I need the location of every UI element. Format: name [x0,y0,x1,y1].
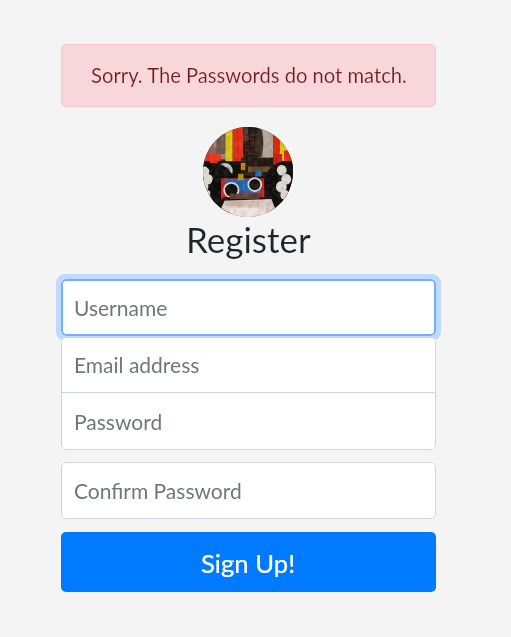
button[interactable]: Sign Up! [61,532,436,592]
button[interactable]: Password [61,393,436,450]
button[interactable]: Username [61,279,436,336]
button[interactable]: Sorry. The Passwords do not match. [61,44,436,107]
staticText: Email address [74,352,200,377]
button[interactable]: Email address [61,337,436,392]
button[interactable]: Confirm Password [61,462,436,519]
staticText: Username [74,295,168,320]
staticText: Sorry. The Passwords do not match. [91,63,407,87]
staticText: Sign Up! [201,548,296,579]
staticText: Register [186,218,311,260]
staticText: Confirm Password [74,478,242,503]
button[interactable]: Profile photo [203,127,293,217]
staticText: Password [74,409,163,434]
